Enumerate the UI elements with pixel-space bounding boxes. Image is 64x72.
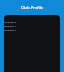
button[interactable]: Member 1 [4,24,60,27]
button[interactable]: Member 2 [4,28,60,31]
staticText: Club Profile [21,5,44,10]
staticText: Member 1 [4,24,17,27]
staticText: Member 2 [4,28,17,31]
button[interactable]: Member 0 [4,20,60,23]
staticText: Member 0 [4,20,17,23]
